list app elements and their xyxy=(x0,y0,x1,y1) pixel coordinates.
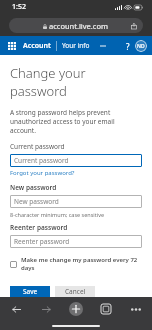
staticText: account.live.com xyxy=(49,21,109,31)
button[interactable]: New password xyxy=(10,195,142,208)
button[interactable]: Current password xyxy=(10,154,142,167)
button[interactable]: Back xyxy=(8,301,24,317)
staticText: ND xyxy=(137,43,145,50)
staticText: Current password xyxy=(10,142,65,151)
button[interactable]: More options xyxy=(128,301,144,317)
button[interactable]: Help xyxy=(121,39,135,53)
staticText: New password xyxy=(14,197,59,206)
button[interactable]: Cancel xyxy=(55,286,95,297)
button[interactable]: Tabs xyxy=(98,301,114,317)
button[interactable]: Forgot your password? xyxy=(10,169,75,177)
staticText: Cancel xyxy=(65,287,86,296)
staticText: Reenter password xyxy=(14,237,70,246)
staticText: Current password xyxy=(14,156,69,165)
button[interactable]: Save xyxy=(10,286,50,297)
staticText: New password xyxy=(10,183,57,192)
button[interactable]: Forward xyxy=(38,301,54,317)
staticText: 1:52 xyxy=(12,2,26,12)
staticText: Change your password xyxy=(10,64,142,100)
staticText: 8-character minimum; case sensitive xyxy=(10,211,105,218)
button[interactable]: App launcher xyxy=(5,39,19,53)
staticText: Make me change my password every 72 days xyxy=(21,256,142,272)
button[interactable]: Reenter password xyxy=(10,235,142,248)
staticText: Save xyxy=(23,287,38,296)
button[interactable]: New tab xyxy=(68,301,84,317)
staticText: ? xyxy=(126,41,130,52)
button[interactable]: Share xyxy=(129,21,138,30)
button[interactable]: More navigation xyxy=(98,41,108,51)
staticText: A strong password helps prevent unauthor… xyxy=(10,108,142,135)
button[interactable]: Make me change my password every 72 days xyxy=(10,256,142,272)
button[interactable]: Account ND xyxy=(135,40,147,52)
button[interactable]: Account xyxy=(23,41,51,51)
button[interactable]: account.live.com xyxy=(9,18,143,33)
staticText: Reenter password xyxy=(10,223,68,232)
button[interactable]: Your info xyxy=(62,41,90,50)
